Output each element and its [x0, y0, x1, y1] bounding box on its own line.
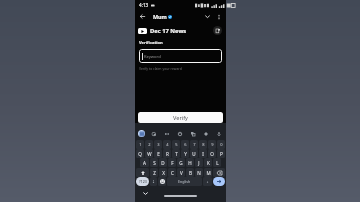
- button[interactable]: J: [195, 158, 203, 167]
- button[interactable]: B: [186, 168, 194, 177]
- staticText: T: [175, 151, 178, 157]
- button[interactable]: K: [204, 158, 212, 167]
- button[interactable]: Q: [136, 149, 144, 158]
- button[interactable]: Emoji: [175, 129, 184, 138]
- staticText: 4: [166, 142, 169, 147]
- button[interactable]: D: [159, 158, 167, 167]
- button[interactable]: English: [167, 177, 202, 186]
- button[interactable]: A: [140, 158, 149, 167]
- button[interactable]: Z: [150, 168, 158, 177]
- staticText: Verify to claim your reward: [139, 66, 182, 71]
- button[interactable]: W: [145, 149, 153, 158]
- staticText: S: [153, 160, 156, 166]
- button[interactable]: Verify: [138, 112, 223, 123]
- button[interactable]: Keyboard menu: [138, 130, 145, 137]
- button[interactable]: I: [199, 149, 207, 158]
- staticText: E: [157, 151, 160, 157]
- staticText: L: [216, 160, 219, 166]
- button[interactable]: Backspace: [213, 168, 225, 177]
- staticText: P: [220, 151, 223, 157]
- button[interactable]: Clipboard: [149, 129, 158, 138]
- button[interactable]: Emoji: [158, 177, 166, 186]
- button[interactable]: 3: [154, 140, 162, 149]
- staticText: Verify: [173, 114, 188, 122]
- button[interactable]: F: [168, 158, 176, 167]
- staticText: Keyword: [144, 54, 161, 60]
- button[interactable]: C: [168, 168, 176, 177]
- button[interactable]: 7: [190, 140, 198, 149]
- staticText: F: [171, 160, 174, 166]
- button[interactable]: N: [195, 168, 203, 177]
- staticText: U: [192, 151, 196, 157]
- button[interactable]: U: [190, 149, 198, 158]
- button[interactable]: 9: [208, 140, 216, 149]
- staticText: H: [188, 160, 192, 166]
- staticText: C: [171, 170, 174, 176]
- button[interactable]: H: [186, 158, 194, 167]
- button[interactable]: Voice input: [214, 129, 223, 138]
- button[interactable]: Keyword: [139, 49, 222, 63]
- button[interactable]: Translate: [188, 129, 197, 138]
- staticText: O: [210, 151, 214, 157]
- staticText: Y: [184, 151, 187, 157]
- button[interactable]: ?123: [136, 177, 149, 186]
- staticText: I: [202, 151, 204, 157]
- staticText: 2: [148, 142, 151, 147]
- button[interactable]: Show more: [202, 11, 213, 22]
- button[interactable]: R: [163, 149, 171, 158]
- button[interactable]: L: [213, 158, 221, 167]
- staticText: Dec 17 News: [150, 27, 187, 35]
- button[interactable]: 8: [199, 140, 207, 149]
- button[interactable]: GIF: [162, 129, 171, 138]
- staticText: 9: [211, 142, 214, 147]
- button[interactable]: Dec 17 News: [135, 25, 226, 36]
- staticText: D: [161, 160, 165, 166]
- staticText: 7: [193, 142, 196, 147]
- staticText: Z: [153, 170, 156, 176]
- staticText: R: [166, 151, 169, 157]
- button[interactable]: P: [217, 149, 225, 158]
- button[interactable]: Stickers: [201, 129, 210, 138]
- staticText: X: [162, 170, 165, 176]
- staticText: 8: [202, 142, 205, 147]
- button[interactable]: V: [177, 168, 185, 177]
- staticText: K: [207, 160, 210, 166]
- button[interactable]: Comma: [150, 177, 157, 186]
- staticText: 6: [184, 142, 187, 147]
- staticText: Verification: [139, 40, 163, 46]
- button[interactable]: Shift: [136, 168, 149, 177]
- button[interactable]: Y: [181, 149, 189, 158]
- button[interactable]: More options: [214, 12, 224, 22]
- button[interactable]: Hide keyboard: [141, 189, 150, 198]
- button[interactable]: E: [154, 149, 162, 158]
- staticText: J: [198, 160, 200, 166]
- staticText: 4:13: [139, 2, 149, 8]
- staticText: G: [179, 160, 183, 166]
- button[interactable]: X: [159, 168, 167, 177]
- button[interactable]: 6: [181, 140, 189, 149]
- button[interactable]: M: [204, 168, 212, 177]
- button[interactable]: Details: [213, 26, 222, 35]
- button[interactable]: T: [172, 149, 180, 158]
- button[interactable]: 1: [136, 140, 144, 149]
- staticText: B: [189, 170, 192, 176]
- staticText: Q: [138, 151, 142, 157]
- button[interactable]: 4: [163, 140, 171, 149]
- button[interactable]: S: [150, 158, 158, 167]
- button[interactable]: 0: [217, 140, 225, 149]
- button[interactable]: O: [208, 149, 216, 158]
- button[interactable]: Period: [203, 177, 212, 186]
- button[interactable]: G: [177, 158, 185, 167]
- staticText: 5: [175, 142, 178, 147]
- staticText: Mum: [153, 13, 167, 20]
- button[interactable]: Back: [137, 11, 148, 22]
- staticText: W: [147, 151, 152, 157]
- staticText: M: [206, 170, 211, 176]
- staticText: 0: [220, 142, 223, 147]
- button[interactable]: 2: [145, 140, 153, 149]
- button[interactable]: 5: [172, 140, 180, 149]
- button[interactable]: Enter: [213, 177, 225, 186]
- staticText: A: [143, 160, 146, 166]
- staticText: ?123: [139, 179, 147, 184]
- staticText: N: [197, 170, 201, 176]
